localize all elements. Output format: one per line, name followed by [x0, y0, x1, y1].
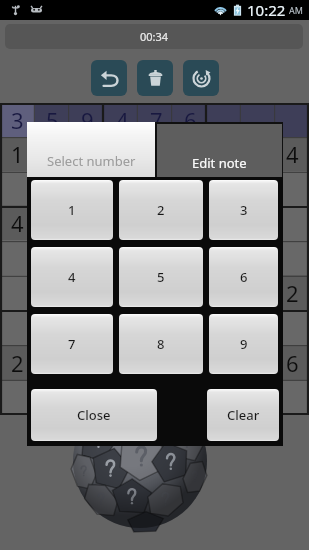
- button[interactable]: [139, 240, 173, 275]
- button[interactable]: [207, 380, 241, 415]
- button[interactable]: Close: [31, 389, 157, 441]
- button[interactable]: [70, 345, 105, 380]
- button[interactable]: [207, 137, 241, 171]
- button[interactable]: 00:34: [5, 24, 303, 49]
- button[interactable]: [207, 103, 241, 137]
- button[interactable]: 1: [0, 137, 35, 171]
- button[interactable]: [241, 137, 275, 171]
- button[interactable]: 9: [70, 103, 105, 137]
- button[interactable]: [70, 275, 105, 310]
- button[interactable]: Edit note: [157, 124, 282, 177]
- button[interactable]: [207, 310, 241, 345]
- button[interactable]: [35, 240, 70, 275]
- button[interactable]: [0, 380, 35, 415]
- button[interactable]: [275, 171, 309, 205]
- button[interactable]: [105, 240, 139, 275]
- button[interactable]: [173, 345, 207, 380]
- button[interactable]: [70, 171, 105, 205]
- button[interactable]: [275, 310, 309, 345]
- button[interactable]: [105, 137, 139, 171]
- button[interactable]: [139, 205, 173, 240]
- button[interactable]: [207, 345, 241, 380]
- button[interactable]: [139, 171, 173, 205]
- button[interactable]: [275, 205, 309, 240]
- button[interactable]: [241, 171, 275, 205]
- button[interactable]: [35, 171, 70, 205]
- staticText: Close: [77, 406, 111, 424]
- button[interactable]: [139, 310, 173, 345]
- button[interactable]: [173, 310, 207, 345]
- button[interactable]: [173, 205, 207, 240]
- button[interactable]: [173, 171, 207, 205]
- button[interactable]: [70, 310, 105, 345]
- button[interactable]: [70, 137, 105, 171]
- button[interactable]: 3: [209, 180, 278, 240]
- button[interactable]: 5: [119, 247, 203, 307]
- button[interactable]: [105, 205, 139, 240]
- button[interactable]: [105, 171, 139, 205]
- button[interactable]: [241, 275, 275, 310]
- button[interactable]: 8: [119, 314, 203, 374]
- button[interactable]: Restart: [183, 60, 219, 96]
- button[interactable]: 2: [0, 345, 35, 380]
- button[interactable]: [139, 275, 173, 310]
- button[interactable]: [207, 171, 241, 205]
- button[interactable]: 4: [105, 103, 139, 137]
- button[interactable]: 2: [119, 180, 203, 240]
- button[interactable]: [70, 380, 105, 415]
- button[interactable]: [173, 137, 207, 171]
- button[interactable]: [173, 275, 207, 310]
- button[interactable]: [241, 345, 275, 380]
- button[interactable]: [207, 240, 241, 275]
- button[interactable]: 9: [209, 314, 278, 374]
- button[interactable]: 1: [31, 180, 113, 240]
- button[interactable]: [70, 205, 105, 240]
- button[interactable]: [241, 240, 275, 275]
- button[interactable]: [207, 275, 241, 310]
- button[interactable]: 4: [31, 247, 113, 307]
- button[interactable]: [0, 171, 35, 205]
- button[interactable]: [35, 380, 70, 415]
- button[interactable]: [241, 310, 275, 345]
- button[interactable]: [105, 310, 139, 345]
- button[interactable]: 5: [35, 103, 70, 137]
- button[interactable]: 6: [275, 345, 309, 380]
- button[interactable]: [275, 380, 309, 415]
- button[interactable]: 2: [275, 275, 309, 310]
- button[interactable]: 6: [209, 247, 278, 307]
- button[interactable]: [70, 240, 105, 275]
- staticText: 5: [157, 268, 165, 286]
- button[interactable]: [207, 205, 241, 240]
- button[interactable]: [241, 103, 275, 137]
- button[interactable]: [275, 103, 309, 137]
- button[interactable]: [241, 205, 275, 240]
- button[interactable]: Delete: [137, 60, 173, 96]
- button[interactable]: [0, 310, 35, 345]
- button[interactable]: [35, 275, 70, 310]
- button[interactable]: [0, 240, 35, 275]
- button[interactable]: [139, 380, 173, 415]
- button[interactable]: [275, 240, 309, 275]
- button[interactable]: 4: [0, 205, 35, 240]
- button[interactable]: Clear: [207, 389, 279, 441]
- button[interactable]: 3: [0, 103, 35, 137]
- button[interactable]: [35, 310, 70, 345]
- button[interactable]: [35, 205, 70, 240]
- button[interactable]: Undo: [91, 60, 127, 96]
- button[interactable]: 7: [139, 103, 173, 137]
- button[interactable]: [139, 345, 173, 380]
- button[interactable]: Select number: [27, 122, 155, 177]
- button[interactable]: [105, 380, 139, 415]
- button[interactable]: [35, 137, 70, 171]
- button[interactable]: 4: [275, 137, 309, 171]
- button[interactable]: [35, 345, 70, 380]
- button[interactable]: [139, 137, 173, 171]
- button[interactable]: [105, 275, 139, 310]
- button[interactable]: [0, 275, 35, 310]
- button[interactable]: [105, 345, 139, 380]
- button[interactable]: 7: [31, 314, 113, 374]
- button[interactable]: [173, 240, 207, 275]
- button[interactable]: [241, 380, 275, 415]
- button[interactable]: 6: [173, 103, 207, 137]
